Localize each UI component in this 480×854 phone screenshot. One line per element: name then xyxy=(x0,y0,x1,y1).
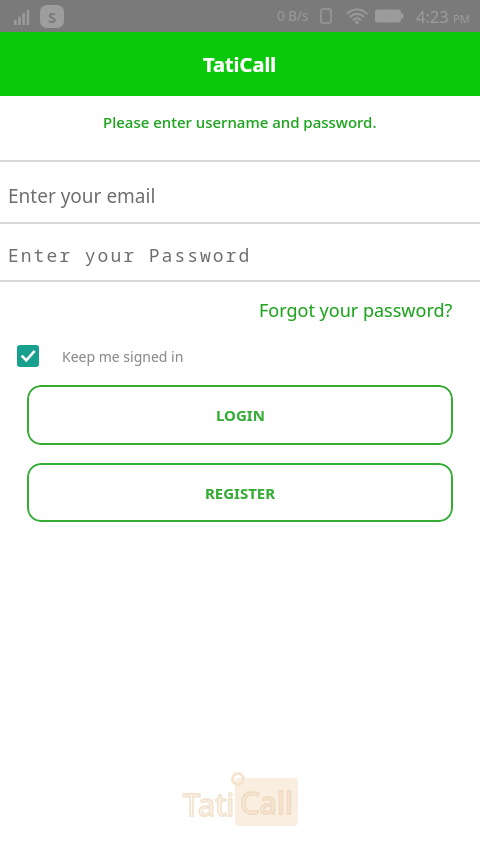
staticText: 4:23 PM xyxy=(416,5,470,27)
button[interactable]: Keep me signed in xyxy=(17,345,184,367)
button[interactable]: Forgot your password? xyxy=(259,298,453,323)
staticText: Enter your email xyxy=(8,183,156,209)
staticText: REGISTER xyxy=(205,483,276,503)
staticText: Keep me signed in xyxy=(62,347,184,366)
staticText: Call xyxy=(240,781,293,823)
staticText: S xyxy=(48,7,57,27)
staticText: LOGIN xyxy=(216,405,265,425)
staticText: 0 B/s xyxy=(277,7,309,25)
staticText: Enter your Password xyxy=(8,243,252,268)
button[interactable]: Enter your Password xyxy=(0,224,480,280)
button[interactable]: Enter your email xyxy=(0,162,480,222)
staticText: Tati xyxy=(183,783,235,825)
button[interactable]: REGISTER xyxy=(27,463,453,522)
staticText: Please enter username and password. xyxy=(103,112,377,132)
staticText: TatiCall xyxy=(203,51,277,78)
button[interactable]: LOGIN xyxy=(27,385,453,445)
